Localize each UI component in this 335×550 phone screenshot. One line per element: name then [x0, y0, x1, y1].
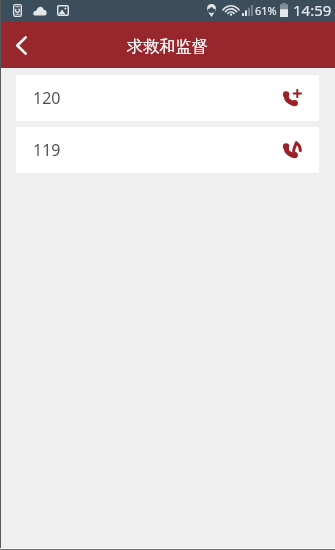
staticText: 120: [33, 87, 61, 109]
staticText: 14:59: [293, 0, 332, 20]
other: Call ambulance 120: [284, 89, 302, 107]
staticText: 求救和监督: [127, 36, 208, 56]
button[interactable]: 119: [16, 127, 319, 173]
staticText: 61%: [255, 3, 277, 18]
button[interactable]: 120: [16, 75, 319, 121]
staticText: 119: [33, 139, 61, 161]
button[interactable]: Back: [0, 22, 42, 68]
other: Call fire brigade 119: [284, 141, 302, 159]
